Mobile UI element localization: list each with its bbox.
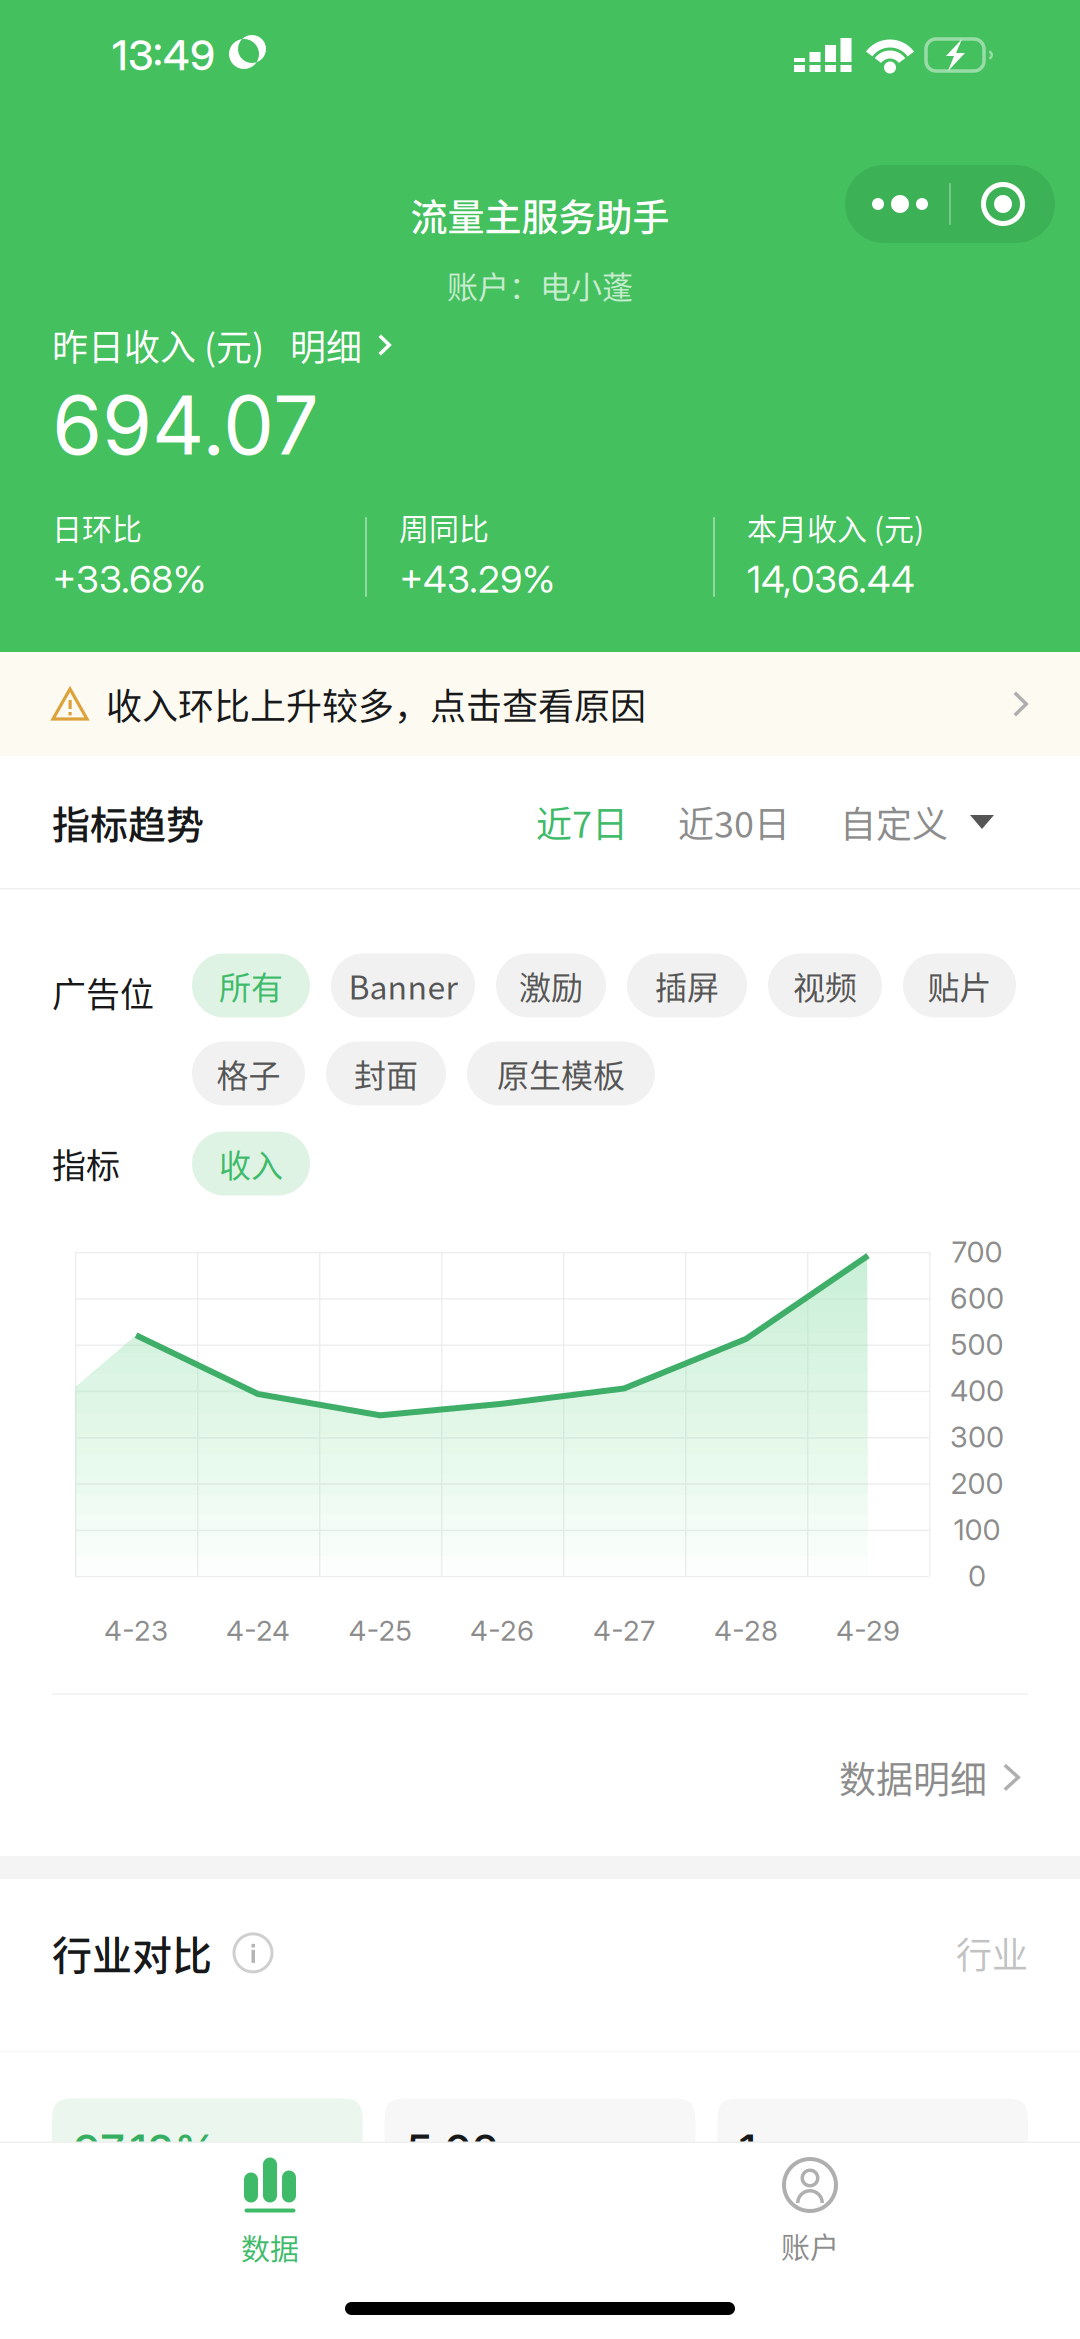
staticText: 100 (953, 1512, 1000, 1547)
staticText: 指标趋势 (52, 794, 204, 849)
staticText: 广告位 (52, 967, 154, 1017)
staticText: 5.02 (406, 2124, 499, 2177)
staticText: 流量主服务助手 (410, 188, 669, 242)
staticText: 所有 (219, 962, 283, 1009)
button[interactable]: 插屏 (627, 953, 747, 1017)
staticText: 收入环比上升较多，点击查看原因 (106, 678, 646, 730)
staticText: +33.68% (52, 556, 206, 602)
staticText: 4-26 (470, 1613, 534, 1647)
button[interactable]: About industry comparison (234, 1934, 272, 1972)
staticText: 97.12% (73, 2124, 218, 2177)
staticText: 300 (950, 1419, 1004, 1455)
staticText: 日环比 (52, 505, 142, 549)
button[interactable]: 格子 (192, 1041, 305, 1105)
button[interactable]: 97.12% (52, 2098, 363, 2312)
staticText: 0 (968, 1558, 986, 1593)
button[interactable]: 5.02 (385, 2098, 695, 2312)
staticText: 行业 (956, 1927, 1028, 1979)
staticText: 指标 (52, 1139, 120, 1188)
staticText: 数据明细 (839, 1751, 987, 1804)
button[interactable]: 1 (717, 2098, 1028, 2312)
staticText: 近7日 (536, 796, 628, 848)
button[interactable]: 所有 (192, 953, 310, 1017)
staticText: 600 (950, 1281, 1004, 1316)
button[interactable]: 数据明细 (839, 1695, 1020, 1860)
staticText: 1 (738, 2124, 756, 2177)
staticText: Banner (348, 962, 457, 1009)
button[interactable]: More (845, 165, 1055, 243)
button[interactable]: 自定义 (790, 792, 994, 852)
staticText: 数据 (241, 2226, 299, 2268)
button[interactable]: 贴片 (903, 953, 1016, 1017)
button[interactable]: 近7日 (536, 792, 628, 852)
staticText: 格子 (216, 1050, 280, 1097)
staticText: 13:49 (112, 30, 215, 80)
staticText: 账户：电小蓬 (447, 263, 633, 307)
button[interactable]: 视频 (768, 953, 882, 1017)
staticText: 近30日 (678, 796, 790, 848)
button[interactable]: 激励 (496, 953, 606, 1017)
button[interactable]: 昨日收入 (元) (52, 318, 1080, 372)
staticText: 14,036.44 (747, 556, 915, 602)
staticText: 400 (950, 1373, 1004, 1408)
staticText: 昨日收入 (元) (52, 319, 264, 371)
staticText: 694.07 (52, 376, 319, 474)
staticText: 原生模板 (497, 1050, 625, 1097)
staticText: 4-27 (593, 1613, 655, 1647)
staticText: 插屏 (655, 962, 719, 1009)
staticText: 视频 (793, 962, 857, 1009)
button[interactable]: 封面 (326, 1041, 446, 1105)
staticText: 700 (951, 1234, 1002, 1269)
staticText: 账户 (781, 2225, 839, 2267)
staticText: 封面 (354, 1050, 418, 1097)
staticText: 4-29 (836, 1613, 900, 1647)
staticText: 本月收入 (元) (747, 505, 924, 549)
staticText: 自定义 (840, 796, 948, 848)
staticText: +43.29% (399, 556, 555, 602)
button[interactable]: 账户 (540, 2143, 1080, 2283)
button[interactable]: 近30日 (628, 792, 790, 852)
staticText: 明细 (290, 319, 362, 371)
staticText: 4-25 (348, 1613, 411, 1647)
staticText: 收入 (219, 1140, 283, 1187)
button[interactable]: 原生模板 (467, 1041, 655, 1105)
staticText: 4-23 (104, 1613, 168, 1647)
button[interactable]: Banner (331, 953, 475, 1017)
button[interactable]: 收入 (192, 1131, 310, 1195)
staticText: 贴片 (927, 962, 991, 1009)
staticText: 激励 (519, 962, 583, 1009)
staticText: 500 (950, 1327, 1003, 1362)
staticText: 行业对比 (52, 1924, 212, 1982)
staticText: 4-24 (226, 1613, 290, 1647)
button[interactable]: 数据 (0, 2143, 540, 2283)
staticText: 4-28 (714, 1613, 778, 1647)
staticText: 200 (950, 1466, 1003, 1501)
staticText: 周同比 (399, 505, 489, 549)
button[interactable]: 收入环比上升较多，点击查看原因 (0, 652, 1080, 756)
